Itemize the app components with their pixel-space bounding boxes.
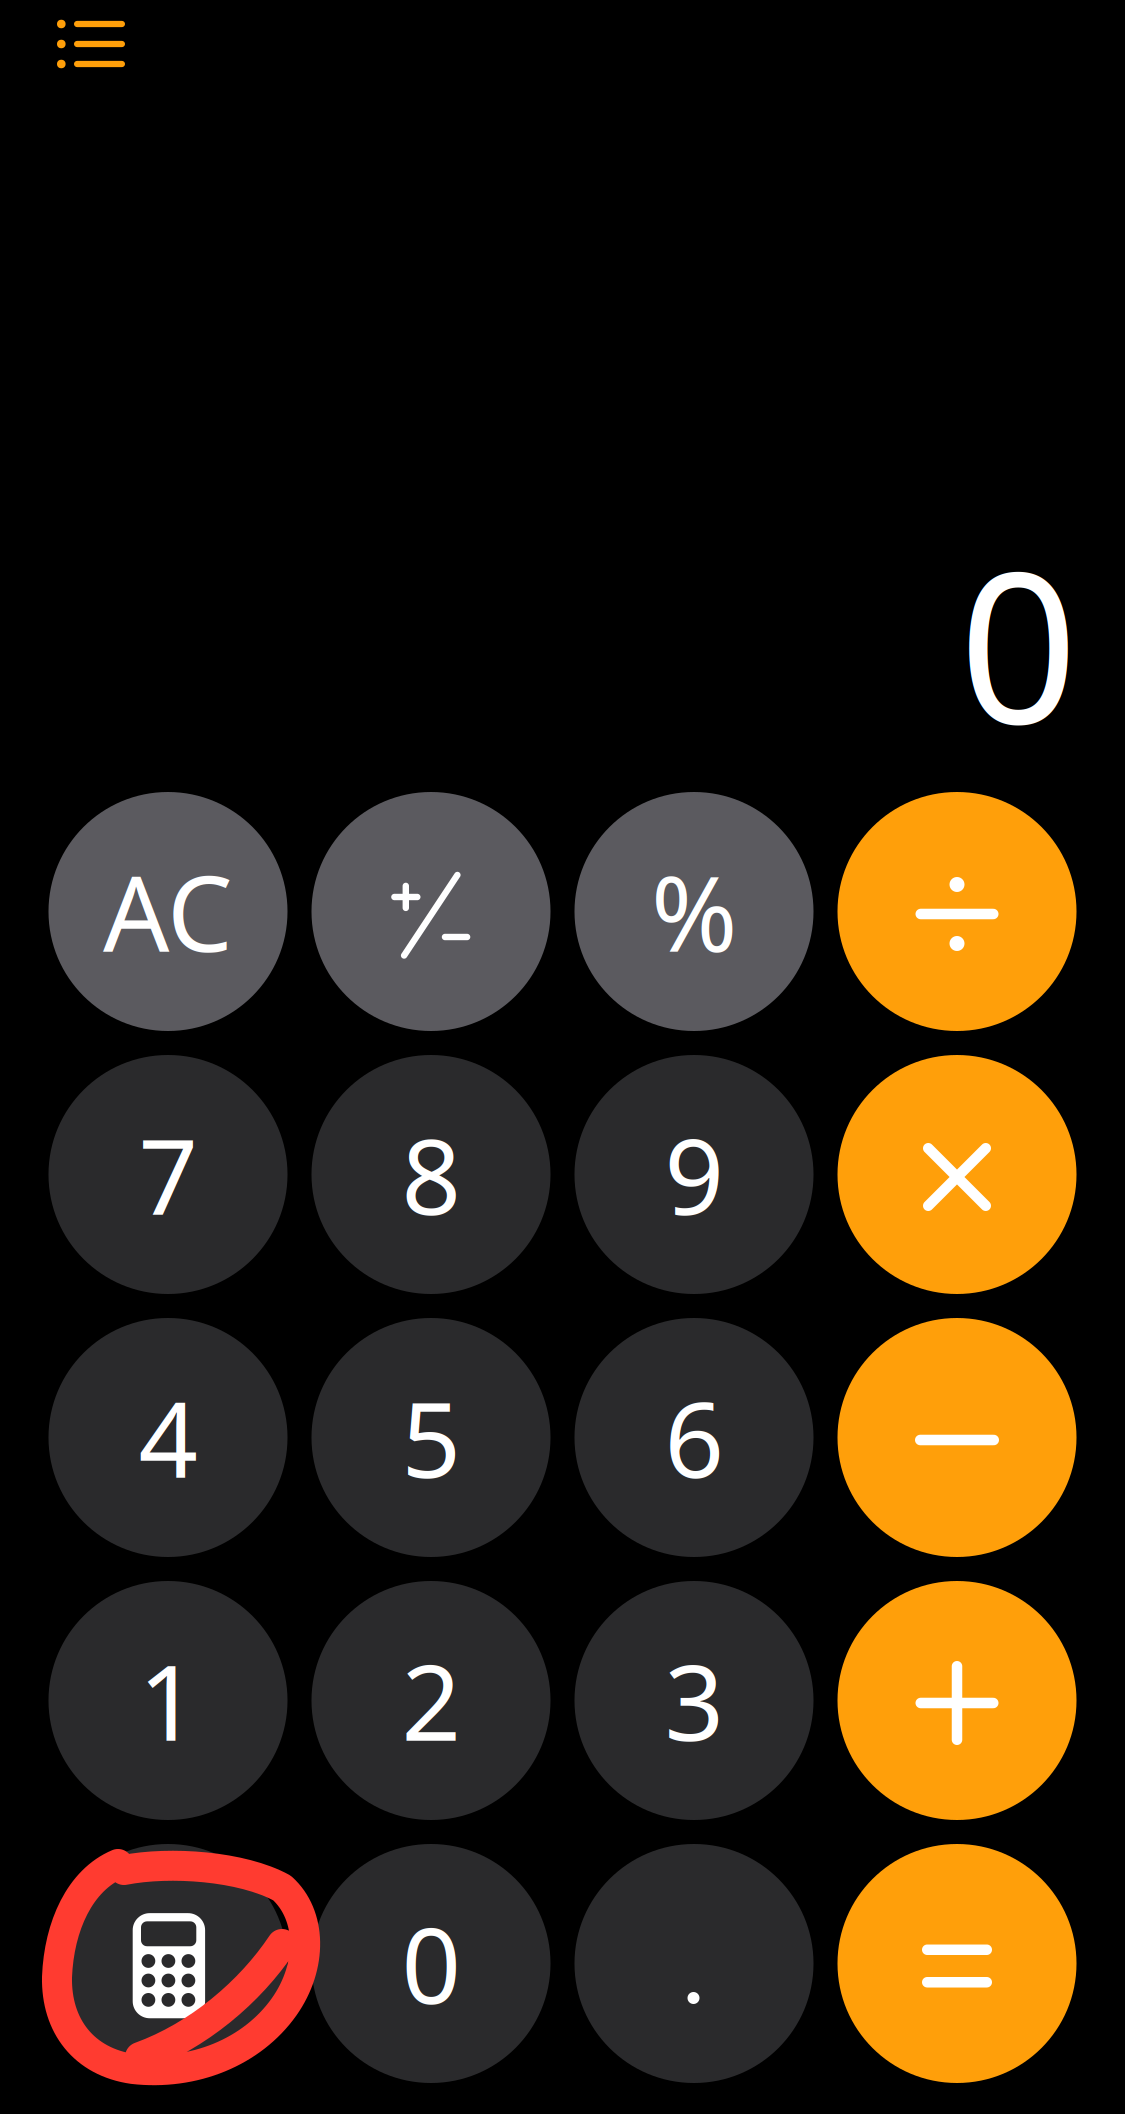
staticText: % xyxy=(651,842,737,980)
button[interactable]: Multiply xyxy=(837,1055,1076,1294)
staticText: 5 xyxy=(401,1368,460,1506)
button[interactable]: AC xyxy=(48,792,287,1031)
button[interactable]: Add xyxy=(837,1581,1076,1820)
button[interactable]: 1 xyxy=(48,1581,287,1820)
button[interactable]: History xyxy=(0,0,151,94)
button[interactable]: 7 xyxy=(48,1055,287,1294)
staticText: 6 xyxy=(664,1368,723,1506)
staticText: 3 xyxy=(664,1631,723,1769)
staticText: 9 xyxy=(664,1105,723,1243)
button[interactable]: Decimal point xyxy=(574,1844,813,2083)
staticText: 0 xyxy=(959,505,1078,781)
staticText: 4 xyxy=(138,1368,197,1506)
button[interactable]: 6 xyxy=(574,1318,813,1557)
button[interactable]: 0 xyxy=(311,1844,550,2083)
staticText: 1 xyxy=(138,1631,197,1769)
button[interactable]: 4 xyxy=(48,1318,287,1557)
staticText: 8 xyxy=(401,1105,460,1243)
staticText: 0 xyxy=(401,1894,460,2032)
staticText: 2 xyxy=(401,1631,460,1769)
button[interactable]: Calculator xyxy=(48,1844,287,2083)
button[interactable]: 8 xyxy=(311,1055,550,1294)
button[interactable]: 5 xyxy=(311,1318,550,1557)
button[interactable]: 3 xyxy=(574,1581,813,1820)
button[interactable]: Toggle sign xyxy=(311,792,550,1031)
staticText: 7 xyxy=(138,1105,197,1243)
button[interactable]: Subtract xyxy=(837,1318,1076,1557)
button[interactable]: 9 xyxy=(574,1055,813,1294)
button[interactable]: % xyxy=(574,792,813,1031)
button[interactable]: 2 xyxy=(311,1581,550,1820)
staticText: AC xyxy=(103,842,233,980)
button[interactable]: Equals xyxy=(837,1844,1076,2083)
button[interactable]: Divide xyxy=(837,792,1076,1031)
